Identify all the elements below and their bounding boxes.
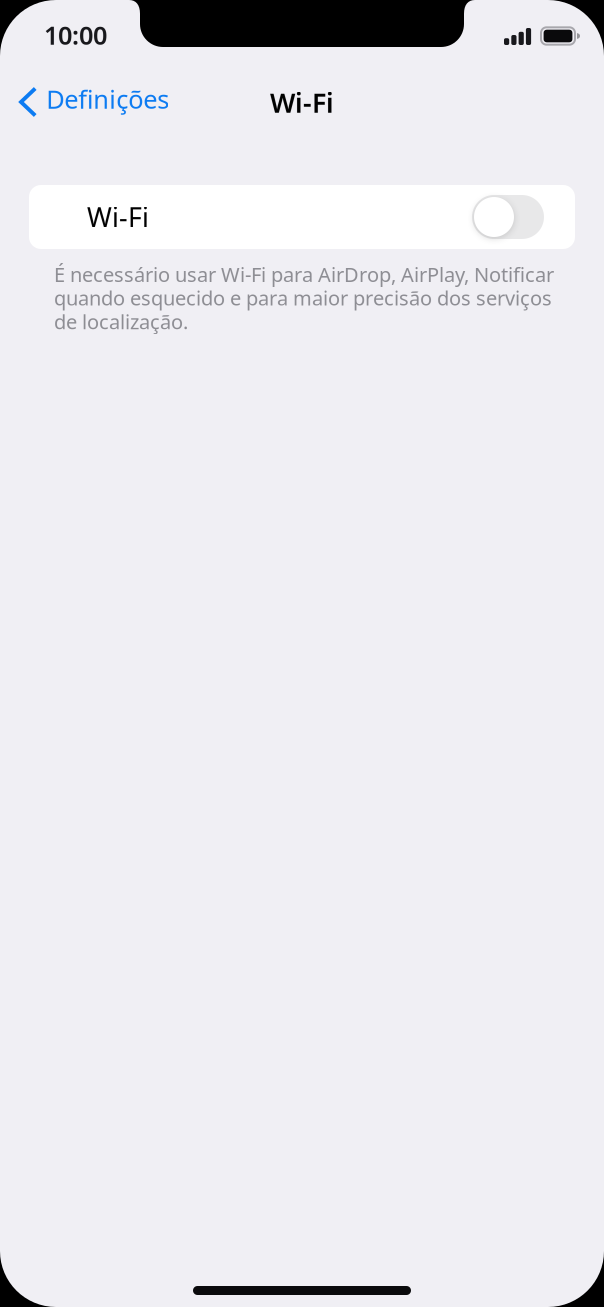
staticText: Definições xyxy=(46,82,169,116)
staticText: Wi-Fi xyxy=(87,199,149,235)
staticText: 10:00 xyxy=(44,18,107,52)
staticText: Wi-Fi xyxy=(270,85,334,120)
staticText: É necessário usar Wi-Fi para AirDrop, Ai… xyxy=(54,261,554,335)
button[interactable]: Definições xyxy=(0,73,181,125)
button[interactable]: Wi-Fi xyxy=(472,195,544,239)
